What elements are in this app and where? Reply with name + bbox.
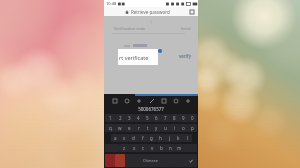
staticText: 5 — [146, 115, 149, 121]
button[interactable]: rt verificate — [118, 49, 158, 65]
button[interactable]: h — [156, 134, 165, 142]
staticText: Retrieve password — [131, 9, 170, 15]
other: Secure site — [125, 10, 129, 14]
button[interactable]: a — [111, 134, 120, 142]
button[interactable]: 1 — [105, 114, 115, 122]
button[interactable]: Keyboard tool 7 — [184, 97, 191, 104]
staticText: Chinese — [143, 158, 158, 163]
button[interactable]: Enter — [185, 154, 197, 167]
staticText: v — [151, 145, 154, 151]
button[interactable]: 6 — [152, 114, 161, 122]
staticText: 10:48 — [106, 1, 117, 6]
button[interactable]: 7 — [161, 114, 170, 122]
button[interactable]: 4 — [134, 114, 143, 122]
button[interactable]: 0 — [188, 114, 197, 122]
staticText: d — [132, 135, 135, 141]
button[interactable]: m — [175, 144, 184, 152]
button[interactable]: q — [105, 124, 115, 132]
staticText: 7 — [164, 115, 167, 121]
staticText: q — [109, 125, 112, 131]
staticText: 5000676577 — [138, 106, 164, 112]
button[interactable]: Secure site — [104, 7, 198, 16]
button[interactable]: d — [129, 134, 138, 142]
staticText: e — [128, 125, 131, 131]
button[interactable]: Tabs — [189, 9, 195, 15]
button[interactable]: k — [174, 134, 183, 142]
staticText: g — [150, 135, 153, 141]
staticText: 1 — [109, 115, 112, 121]
staticText: l — [187, 135, 189, 141]
button[interactable]: y — [152, 124, 161, 132]
staticText: 3 — [128, 115, 131, 121]
staticText: t — [147, 125, 149, 131]
staticText: 9 — [182, 115, 185, 121]
button[interactable]: l — [183, 134, 192, 142]
staticText: z — [123, 145, 126, 151]
staticText: m — [177, 145, 182, 151]
staticText: rt verificate — [119, 54, 149, 61]
staticText: s — [123, 135, 126, 141]
staticText: i — [174, 125, 176, 131]
staticText: k — [177, 135, 180, 141]
staticText: Send — [181, 26, 191, 31]
button[interactable]: Keyboard tool 1 — [111, 97, 118, 104]
staticText: 4 — [137, 115, 140, 121]
button[interactable]: w — [115, 124, 125, 132]
staticText: b — [160, 145, 163, 151]
staticText: j — [169, 135, 171, 141]
staticText: verify — [179, 53, 192, 59]
button[interactable]: Keyboard tool 5 — [160, 97, 167, 104]
button[interactable]: c — [139, 144, 148, 152]
button[interactable]: x — [129, 144, 139, 152]
staticText: r — [138, 125, 140, 131]
button[interactable]: Symbols — [105, 154, 115, 167]
button[interactable]: 2 — [115, 114, 125, 122]
button[interactable]: n — [166, 144, 175, 152]
staticText: 6 — [155, 115, 158, 121]
button[interactable]: o — [179, 124, 188, 132]
button[interactable]: j — [165, 134, 174, 142]
button[interactable]: Emoji — [115, 154, 125, 167]
button[interactable]: b — [157, 144, 166, 152]
button[interactable]: i — [170, 124, 179, 132]
button[interactable]: 9 — [179, 114, 188, 122]
button[interactable]: s — [120, 134, 129, 142]
staticText: u — [164, 125, 167, 131]
staticText: p — [191, 125, 194, 131]
button[interactable]: Chinese — [125, 154, 175, 167]
button[interactable]: Keyboard tool 6 — [172, 97, 179, 104]
button[interactable]: 5 — [143, 114, 152, 122]
staticText: y — [155, 125, 158, 131]
button[interactable]: t — [143, 124, 152, 132]
staticText: 0 — [191, 115, 194, 121]
button[interactable]: g — [147, 134, 156, 142]
button[interactable]: f — [138, 134, 147, 142]
button[interactable]: Keyboard tool 2 — [123, 97, 130, 104]
button[interactable]: e — [125, 124, 134, 132]
staticText: f — [142, 135, 144, 141]
button[interactable]: z — [119, 144, 129, 152]
button[interactable]: Keyboard tool 4 — [148, 97, 155, 104]
button[interactable]: v — [148, 144, 157, 152]
button[interactable]: u — [161, 124, 170, 132]
staticText: 2 — [119, 115, 122, 121]
button[interactable]: Keyboard tool 3 — [135, 97, 142, 104]
staticText: a — [114, 135, 117, 141]
button[interactable]: p — [188, 124, 197, 132]
button[interactable]: 8 — [170, 114, 179, 122]
staticText: c — [142, 145, 145, 151]
button[interactable]: 3 — [125, 114, 134, 122]
staticText: Verification code — [114, 26, 146, 31]
button[interactable]: r — [134, 124, 143, 132]
staticText: h — [159, 135, 162, 141]
staticText: o — [182, 125, 185, 131]
staticText: w — [118, 125, 122, 131]
staticText: n — [169, 145, 172, 151]
staticText: 8 — [173, 115, 176, 121]
staticText: x — [133, 145, 136, 151]
